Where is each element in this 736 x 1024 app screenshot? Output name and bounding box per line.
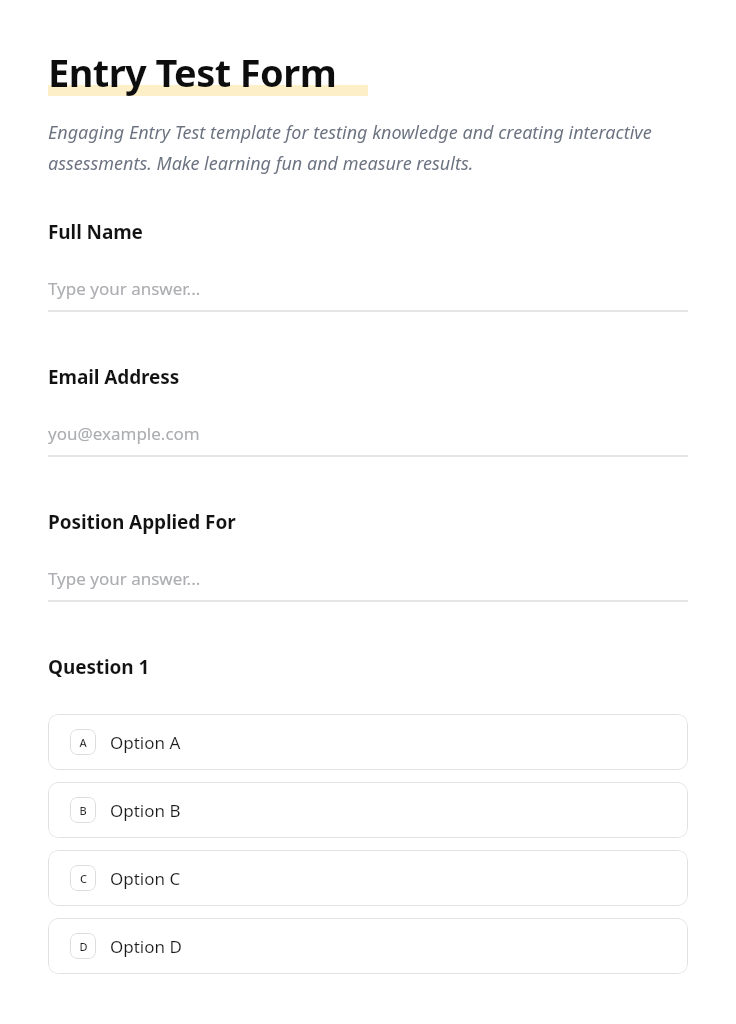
staticText: Engaging Entry Test template for testing… [48,120,688,175]
button[interactable]: Type your answer... [48,277,688,312]
staticText: Question 1 [48,654,150,680]
staticText: Option A [110,731,181,754]
staticText: Full Name [48,219,143,245]
button[interactable]: B [48,782,688,838]
staticText: D [79,939,88,954]
staticText: Option C [110,867,181,890]
button[interactable]: you@example.com [48,422,688,457]
button[interactable]: Type your answer... [48,567,688,602]
staticText: A [79,735,87,750]
staticText: Position Applied For [48,509,236,535]
staticText: you@example.com [48,422,200,445]
staticText: Option D [110,935,182,958]
staticText: Email Address [48,364,180,390]
button[interactable]: D [48,918,688,974]
staticText: B [79,803,87,818]
button[interactable]: A [48,714,688,770]
button[interactable]: C [48,850,688,906]
staticText: Type your answer... [48,277,201,300]
staticText: C [80,871,87,886]
staticText: Type your answer... [48,567,201,590]
staticText: Entry Test Form [48,46,337,98]
staticText: Option B [110,799,181,822]
